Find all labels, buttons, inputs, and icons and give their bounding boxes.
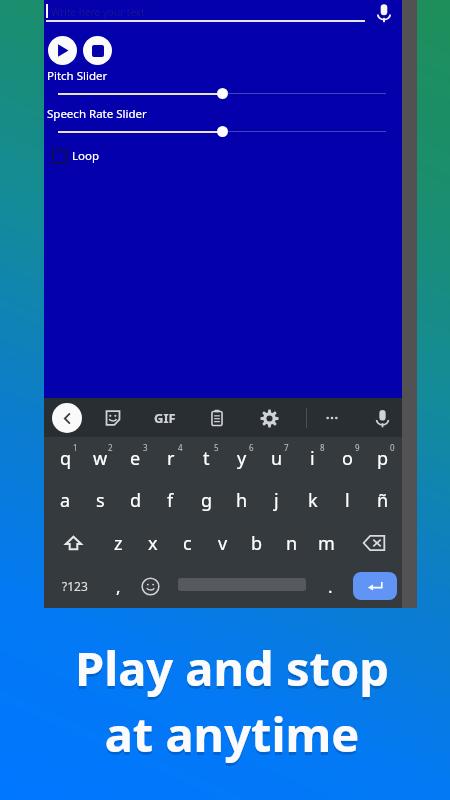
staticText: 0 [390, 442, 395, 453]
staticText: e [130, 446, 141, 471]
staticText: ?123 [62, 578, 88, 594]
button[interactable]: m [309, 522, 344, 564]
button[interactable]: Backspace [356, 522, 391, 564]
staticText: Write here your text [51, 5, 145, 19]
staticText: at anytime [7, 705, 450, 769]
button[interactable]: i [295, 437, 330, 479]
staticText: . [328, 575, 333, 598]
button[interactable]: l [330, 479, 365, 521]
button[interactable]: GIF [148, 401, 182, 435]
staticText: 2 [108, 442, 113, 453]
staticText: Play and stop [7, 636, 450, 700]
button[interactable]: h [224, 479, 259, 521]
button[interactable]: Voice typing [369, 405, 395, 431]
button[interactable]: u [259, 437, 294, 479]
staticText: ñ [377, 488, 389, 513]
staticText: p [377, 446, 389, 471]
button[interactable]: e [118, 437, 153, 479]
staticText: v [218, 531, 228, 556]
button[interactable]: q [48, 437, 83, 479]
button[interactable]: k [295, 479, 330, 521]
button[interactable]: y [224, 437, 259, 479]
staticText: 5 [214, 442, 219, 453]
staticText: z [114, 531, 123, 556]
button[interactable]: a [48, 479, 83, 521]
staticText: a [60, 488, 71, 513]
button[interactable]: w [83, 437, 118, 479]
staticText: s [96, 488, 105, 513]
staticText: GIF [154, 409, 176, 427]
button[interactable]: p [365, 437, 400, 479]
staticText: u [271, 446, 283, 471]
button[interactable]: f [153, 479, 188, 521]
button[interactable]: Settings [256, 405, 282, 431]
staticText: x [148, 531, 158, 556]
staticText: , [116, 575, 121, 598]
staticText: w [93, 446, 108, 471]
button[interactable]: s [83, 479, 118, 521]
button[interactable]: Loop [52, 148, 100, 164]
staticText: Speech Rate Slider [47, 106, 147, 122]
staticText: q [60, 446, 72, 471]
staticText: l [345, 488, 350, 513]
staticText: Loop [72, 148, 100, 164]
button[interactable]: x [135, 522, 170, 564]
staticText: 4 [178, 442, 183, 453]
staticText: g [201, 488, 213, 513]
staticText: 6 [249, 442, 254, 453]
button[interactable]: o [330, 437, 365, 479]
button[interactable]: Clipboard [204, 405, 230, 431]
staticText: r [167, 446, 175, 471]
staticText: t [203, 446, 210, 471]
button[interactable]: g [189, 479, 224, 521]
staticText: 1 [73, 442, 78, 453]
staticText: c [183, 531, 192, 556]
staticText: f [167, 488, 174, 513]
staticText: o [342, 446, 353, 471]
button[interactable]: Stop [83, 36, 112, 65]
button[interactable]: ñ [365, 479, 400, 521]
staticText: 7 [284, 442, 289, 453]
button[interactable]: , [101, 565, 135, 607]
staticText: Play and stop [7, 639, 450, 703]
staticText: i [310, 446, 315, 471]
staticText: 3 [143, 442, 148, 453]
button[interactable]: t [189, 437, 224, 479]
button[interactable]: Emoji [133, 565, 167, 607]
button[interactable]: ?123 [57, 565, 92, 607]
staticText: Pitch Slider [47, 68, 108, 84]
button[interactable]: Voice input [371, 0, 397, 26]
button[interactable]: v [205, 522, 240, 564]
staticText: m [318, 531, 335, 556]
staticText: y [237, 446, 247, 471]
button[interactable]: n [274, 522, 309, 564]
staticText: n [286, 531, 298, 556]
staticText: d [130, 488, 142, 513]
button[interactable]: b [239, 522, 274, 564]
staticText: at anytime [7, 702, 450, 766]
button[interactable]: Stickers [100, 405, 126, 431]
button[interactable]: More options [319, 405, 345, 431]
staticText: 8 [320, 442, 325, 453]
staticText: h [236, 488, 248, 513]
button[interactable]: d [118, 479, 153, 521]
button[interactable]: Shift [56, 522, 91, 564]
button[interactable]: j [259, 479, 294, 521]
button[interactable]: Play [48, 36, 77, 65]
staticText: b [251, 531, 263, 556]
button[interactable]: r [153, 437, 188, 479]
staticText: 9 [355, 442, 360, 453]
button[interactable]: . [313, 565, 347, 607]
button[interactable]: c [170, 522, 205, 564]
staticText: j [274, 488, 279, 513]
button[interactable]: z [101, 522, 136, 564]
button[interactable]: Enter [353, 572, 397, 600]
staticText: k [308, 488, 318, 513]
button[interactable]: Back [52, 403, 82, 433]
